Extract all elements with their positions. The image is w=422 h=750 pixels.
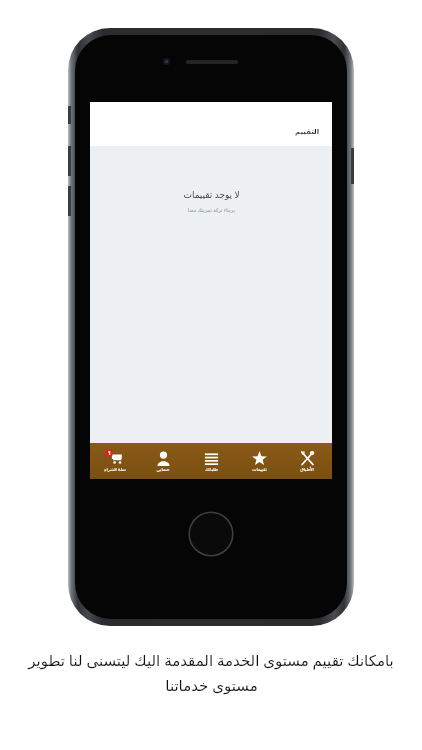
staticText: بامكانك تقييم مستوى الخدمة المقدمة اليك … xyxy=(28,650,394,670)
staticText: لا يوجد تقييمات xyxy=(183,188,240,200)
button[interactable]: الأطباق xyxy=(284,443,330,479)
staticText: مستوى خدماتنا xyxy=(165,675,258,695)
button[interactable]: سلة الشراء xyxy=(92,443,138,479)
staticText: حسابي xyxy=(156,467,170,472)
button[interactable]: حسابي xyxy=(140,443,186,479)
button[interactable]: طلباتك xyxy=(188,443,234,479)
staticText: الأطباق xyxy=(300,467,314,472)
staticText: 1 xyxy=(108,450,111,457)
staticText: طلباتك xyxy=(205,467,218,472)
staticText: سلة الشراء xyxy=(104,466,126,472)
staticText: برجاء تركة تجربتك معنا xyxy=(188,207,235,214)
button[interactable]: تقييمات xyxy=(236,443,282,479)
staticText: تقييمات xyxy=(252,467,267,472)
staticText: التقييم xyxy=(295,128,320,136)
